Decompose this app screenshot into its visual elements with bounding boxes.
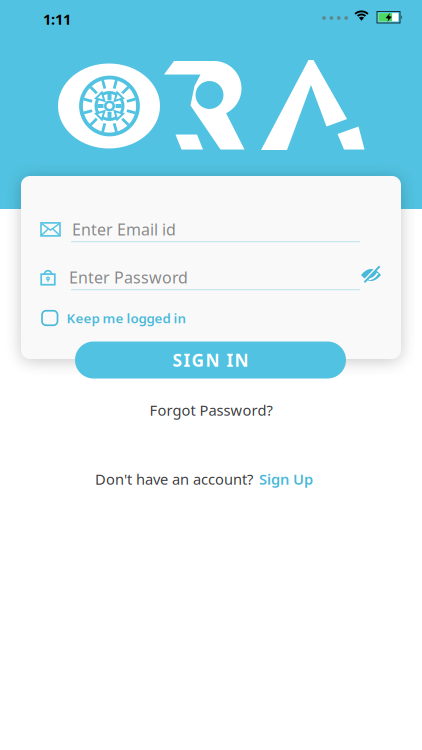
button[interactable]: SIGN IN	[75, 341, 346, 378]
staticText: Keep me logged in	[66, 309, 186, 327]
button[interactable]: Sign Up	[259, 469, 313, 489]
staticText: Enter Email id	[72, 219, 176, 240]
button[interactable]: Forgot Password?	[149, 400, 272, 420]
button[interactable]: Enter Email id	[40, 219, 360, 242]
staticText: SIGN IN	[172, 348, 248, 371]
staticText: Sign Up	[259, 469, 313, 489]
staticText: Forgot Password?	[149, 400, 272, 420]
button[interactable]: Enter Password	[40, 267, 360, 290]
staticText: Enter Password	[69, 267, 188, 288]
staticText: 1:11	[43, 9, 71, 29]
button[interactable]: Show password	[360, 265, 382, 283]
button[interactable]: Keep me logged in	[42, 309, 202, 327]
staticText: Don't have an account?	[95, 469, 253, 489]
